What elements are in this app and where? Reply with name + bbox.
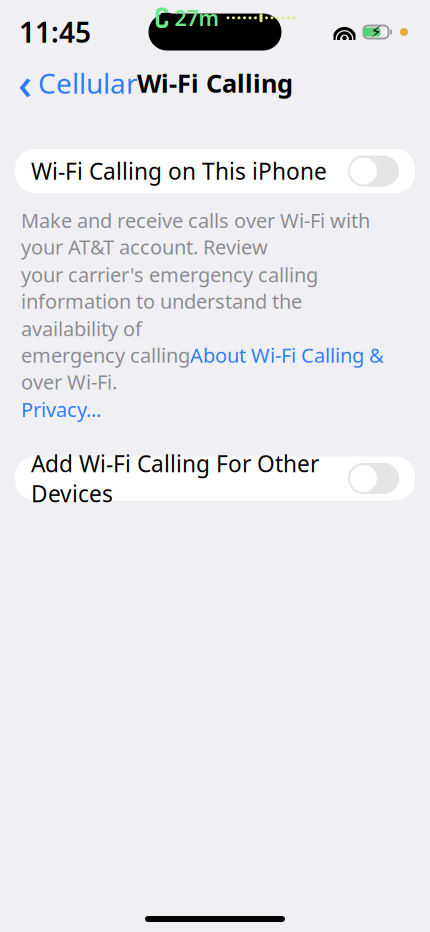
- staticText: Wi-Fi Calling on This iPhone: [31, 156, 327, 186]
- button[interactable]: Add Wi-Fi Calling For Other Devices: [15, 456, 415, 500]
- staticText: Cellular: [38, 64, 138, 102]
- staticText: ⚡︎: [370, 23, 381, 41]
- staticText: ‹: [18, 55, 32, 111]
- staticText: availability of emergency calling over W…: [21, 315, 190, 395]
- staticText: Add Wi-Fi Calling For Other Devices: [31, 448, 319, 509]
- staticText: About Wi-Fi Calling &: [190, 342, 384, 368]
- staticText: Privacy...: [21, 396, 101, 422]
- staticText: your carrier's emergency calling informa…: [21, 261, 318, 314]
- button[interactable]: ‹: [6, 61, 150, 105]
- staticText: Make and receive calls over Wi-Fi with y…: [21, 207, 370, 260]
- staticText: Wi-Fi Calling: [137, 66, 293, 100]
- staticText: 11:45: [19, 13, 91, 51]
- button[interactable]: Wi-Fi Calling on This iPhone: [15, 149, 415, 193]
- staticText: 27m: [174, 4, 218, 32]
